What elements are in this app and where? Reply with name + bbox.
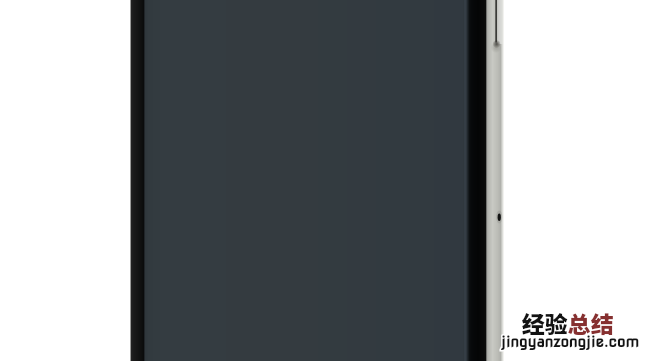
button[interactable]: Power key: [486, 0, 504, 44]
